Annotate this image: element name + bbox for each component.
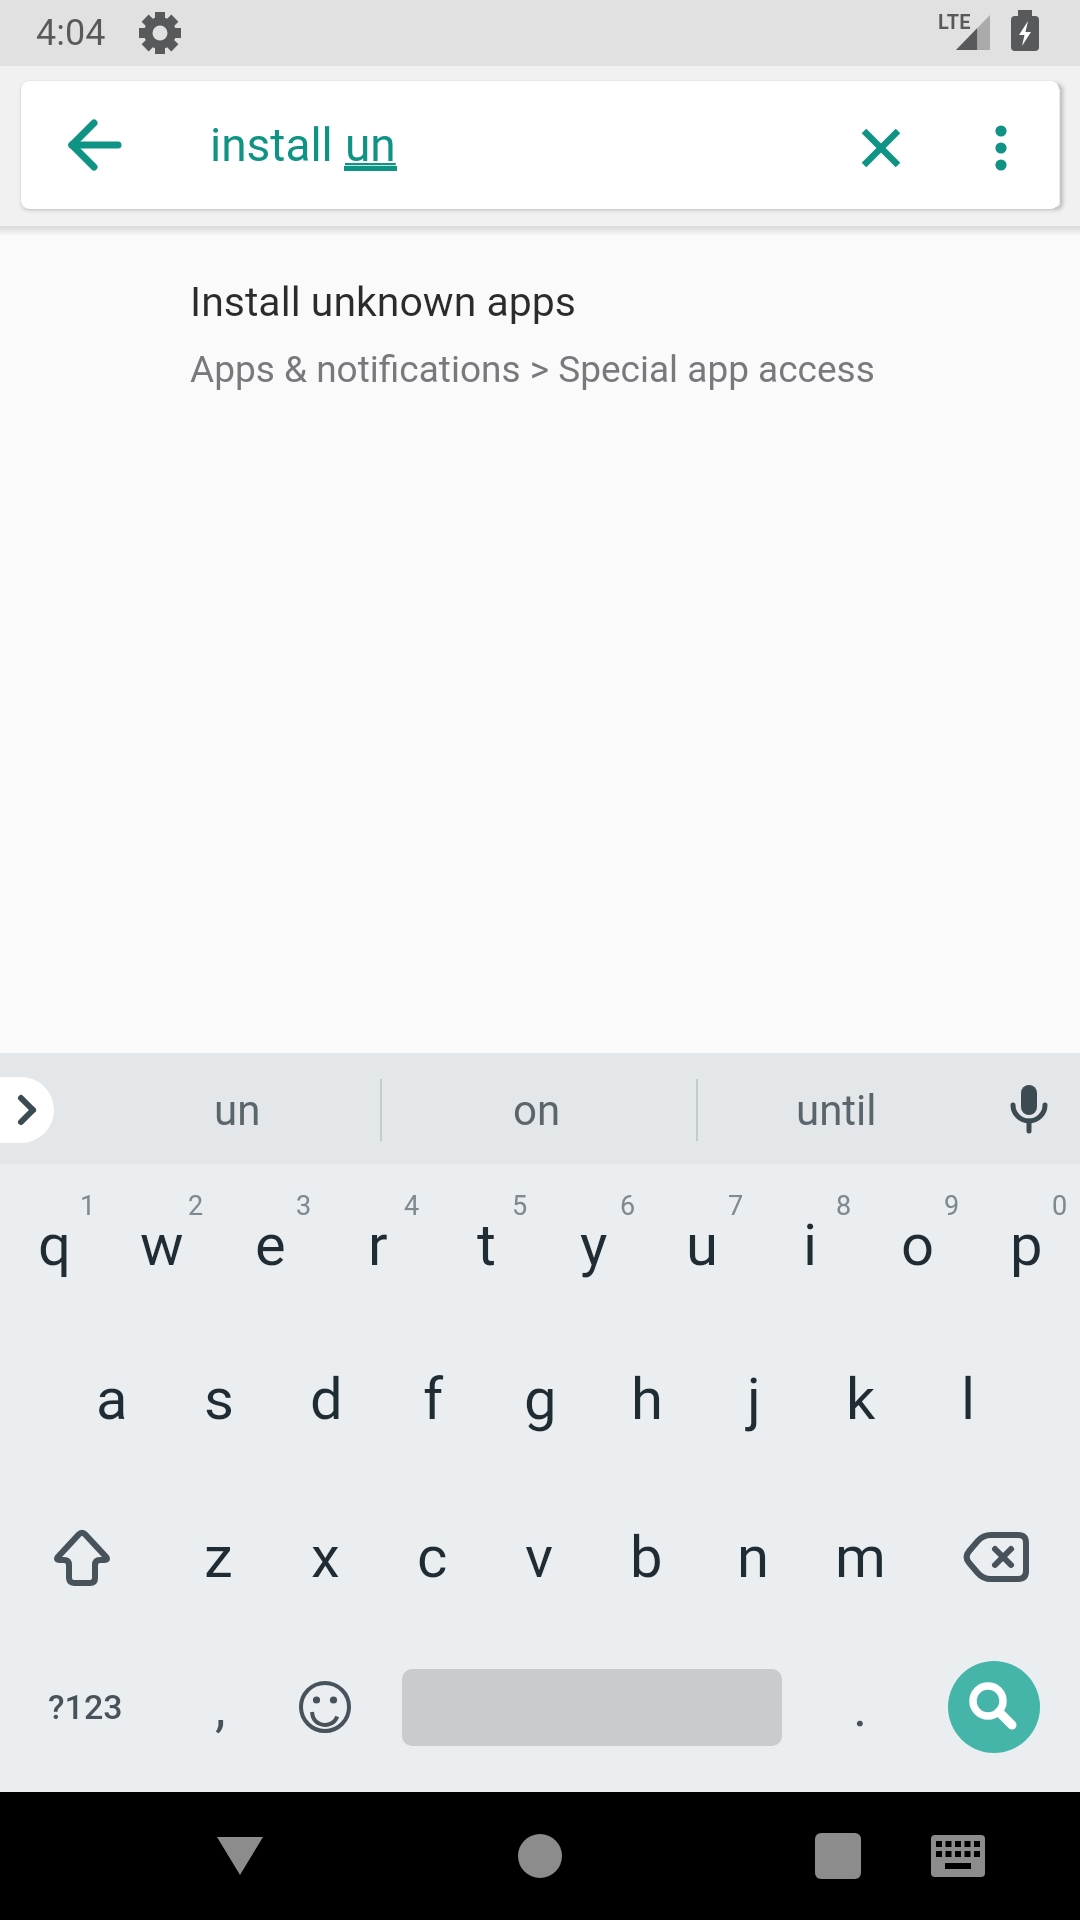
staticText: . [853, 1676, 868, 1739]
staticText: 6 [620, 1190, 636, 1222]
staticText: m [835, 1523, 886, 1591]
staticText: a [96, 1365, 128, 1433]
staticText: w [140, 1211, 184, 1279]
button[interactable]: on [417, 1077, 657, 1143]
staticText: q [38, 1211, 71, 1279]
staticText: LTE [938, 10, 971, 33]
button[interactable] [160, 260, 1040, 420]
staticText: e [255, 1211, 286, 1279]
button[interactable] [22, 1482, 142, 1632]
staticText: u [686, 1211, 718, 1279]
button[interactable]: g [486, 1324, 594, 1474]
button[interactable]: s [165, 1324, 273, 1474]
button[interactable]: ?123 [22, 1632, 148, 1782]
button[interactable]: q [0, 1170, 108, 1320]
staticText: 2 [188, 1190, 204, 1222]
button[interactable] [948, 1661, 1040, 1753]
button[interactable]: k [807, 1324, 915, 1474]
staticText: Install unknown apps [190, 278, 576, 326]
staticText: f [423, 1365, 444, 1433]
staticText: z [204, 1523, 233, 1591]
button[interactable]: z [164, 1482, 272, 1632]
button[interactable]: e [216, 1170, 324, 1320]
button[interactable]: un [117, 1077, 357, 1143]
staticText: un [345, 118, 396, 172]
staticText: 0 [1052, 1190, 1068, 1222]
button[interactable]: until [716, 1077, 956, 1143]
button[interactable]: o [864, 1170, 972, 1320]
button[interactable]: c [378, 1482, 486, 1632]
button[interactable]: r [324, 1170, 432, 1320]
button[interactable] [748, 1792, 928, 1920]
staticText: r [368, 1211, 388, 1279]
staticText: i [803, 1211, 818, 1279]
button[interactable]: p [972, 1170, 1080, 1320]
staticText: s [204, 1365, 234, 1433]
staticText: Apps & notifications > Special app acces… [190, 348, 875, 391]
button[interactable] [150, 1792, 330, 1920]
button[interactable]: w [108, 1170, 216, 1320]
staticText: ?123 [48, 1687, 123, 1727]
staticText: v [525, 1523, 554, 1591]
button[interactable]: d [272, 1324, 380, 1474]
staticText: g [524, 1365, 557, 1433]
button[interactable]: m [806, 1482, 914, 1632]
staticText: j [747, 1365, 761, 1433]
staticText: l [961, 1365, 976, 1433]
button[interactable]: u [648, 1170, 756, 1320]
button[interactable]: v [485, 1482, 593, 1632]
button[interactable] [0, 1077, 54, 1143]
button[interactable]: x [271, 1482, 379, 1632]
staticText: h [631, 1365, 663, 1433]
staticText: 4 [404, 1190, 420, 1222]
staticText: t [477, 1211, 496, 1279]
button[interactable]: h [593, 1324, 701, 1474]
staticText: 1 [80, 1190, 96, 1222]
staticText: c [417, 1523, 448, 1591]
button[interactable] [908, 1792, 1008, 1920]
staticText: o [901, 1211, 935, 1279]
button[interactable] [53, 103, 137, 187]
button[interactable]: . [806, 1632, 914, 1782]
button[interactable] [271, 1632, 379, 1782]
button[interactable]: a [58, 1324, 166, 1474]
staticText: 7 [728, 1190, 744, 1222]
button[interactable] [959, 106, 1043, 190]
button[interactable]: f [379, 1324, 487, 1474]
staticText: install [210, 118, 345, 172]
staticText: until [796, 1086, 877, 1135]
staticText: 9 [944, 1190, 960, 1222]
button[interactable]: , [166, 1632, 274, 1782]
button[interactable]: t [432, 1170, 540, 1320]
button[interactable] [839, 106, 923, 190]
button[interactable]: i [756, 1170, 864, 1320]
button[interactable]: b [592, 1482, 700, 1632]
staticText: 4:04 [36, 12, 106, 54]
staticText: on [513, 1086, 561, 1135]
staticText: y [580, 1211, 608, 1279]
button[interactable] [450, 1792, 630, 1920]
staticText: 3 [296, 1190, 312, 1222]
staticText: p [1010, 1211, 1043, 1279]
staticText: k [846, 1365, 876, 1433]
button[interactable]: y [540, 1170, 648, 1320]
button[interactable] [985, 1077, 1073, 1143]
staticText: n [737, 1523, 770, 1591]
staticText: d [310, 1365, 343, 1433]
button[interactable]: l [914, 1324, 1022, 1474]
staticText: , [215, 1676, 226, 1739]
staticText: un [214, 1086, 261, 1135]
staticText: x [311, 1523, 340, 1591]
button[interactable]: n [699, 1482, 807, 1632]
staticText: 5 [512, 1190, 528, 1222]
button[interactable]: j [700, 1324, 808, 1474]
button[interactable] [932, 1482, 1058, 1632]
staticText: 8 [836, 1190, 852, 1222]
staticText: b [630, 1523, 663, 1591]
